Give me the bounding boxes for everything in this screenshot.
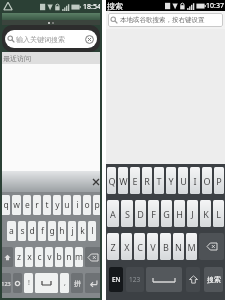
- button[interactable]: s: [18, 221, 26, 241]
- button[interactable]: Q: [107, 167, 116, 194]
- staticText: J: [191, 208, 194, 220]
- button[interactable]: Shift: [186, 267, 200, 292]
- button[interactable]: e: [23, 195, 31, 215]
- staticText: G: [163, 208, 170, 220]
- staticText: W: [119, 175, 128, 187]
- button[interactable]: Space: [35, 273, 58, 293]
- button[interactable]: !: [24, 273, 33, 293]
- button[interactable]: Backspace: [85, 247, 101, 267]
- button[interactable]: G: [161, 200, 172, 227]
- staticText: 18:54: [83, 2, 101, 12]
- staticText: j: [71, 225, 74, 237]
- button[interactable]: Close keyboard: [91, 177, 100, 186]
- button[interactable]: k: [78, 221, 86, 241]
- staticText: C: [137, 241, 143, 253]
- button[interactable]: r: [33, 195, 41, 215]
- button[interactable]: S: [121, 200, 133, 227]
- button[interactable]: 输入关键词搜索: [5, 30, 97, 48]
- button[interactable]: C: [134, 233, 145, 260]
- button[interactable]: q: [1, 195, 10, 215]
- button[interactable]: 123: [1, 273, 11, 293]
- button[interactable]: Z: [107, 233, 119, 260]
- button[interactable]: R: [142, 167, 152, 194]
- button[interactable]: A: [107, 200, 119, 227]
- button[interactable]: ,: [60, 273, 69, 293]
- staticText: Y: [168, 175, 174, 187]
- button[interactable]: f: [38, 221, 46, 241]
- button[interactable]: N: [173, 233, 184, 260]
- staticText: P: [216, 175, 222, 187]
- button[interactable]: V: [147, 233, 158, 260]
- staticText: O: [203, 175, 211, 187]
- button[interactable]: 搜索: [204, 267, 223, 292]
- button[interactable]: w: [12, 195, 21, 215]
- button[interactable]: p: [93, 195, 101, 215]
- button[interactable]: m: [75, 247, 83, 267]
- button[interactable]: z: [15, 247, 23, 267]
- button[interactable]: u: [63, 195, 71, 215]
- button[interactable]: I: [190, 167, 200, 194]
- button[interactable]: Shift: [1, 247, 13, 267]
- staticText: S: [125, 208, 130, 220]
- staticText: e: [25, 199, 30, 211]
- button[interactable]: b: [55, 247, 63, 267]
- button[interactable]: 本地或谷歌搜索，按右键设置: [108, 13, 223, 27]
- staticText: v: [47, 251, 52, 263]
- staticText: y: [55, 199, 60, 211]
- button[interactable]: g: [48, 221, 56, 241]
- button[interactable]: i: [73, 195, 81, 215]
- staticText: L: [216, 208, 221, 220]
- staticText: x: [27, 251, 32, 263]
- button[interactable]: J: [187, 200, 198, 227]
- button[interactable]: X: [121, 233, 132, 260]
- button[interactable]: 拼: [71, 273, 83, 293]
- button[interactable]: x: [25, 247, 33, 267]
- button[interactable]: d: [28, 221, 36, 241]
- button[interactable]: y: [53, 195, 61, 215]
- button[interactable]: Space: [146, 267, 182, 292]
- button[interactable]: Settings: [13, 273, 22, 293]
- button[interactable]: Backspace: [199, 233, 224, 260]
- button[interactable]: a: [7, 221, 16, 241]
- staticText: X: [124, 241, 130, 253]
- staticText: E: [132, 175, 138, 187]
- staticText: g: [49, 225, 55, 237]
- staticText: a: [9, 225, 14, 237]
- button[interactable]: l: [88, 221, 96, 241]
- button[interactable]: H: [174, 200, 185, 227]
- button[interactable]: c: [35, 247, 43, 267]
- staticText: b: [56, 251, 62, 263]
- staticText: 10:37: [206, 1, 224, 11]
- button[interactable]: B: [160, 233, 171, 260]
- button[interactable]: E: [130, 167, 140, 194]
- button[interactable]: v: [45, 247, 53, 267]
- button[interactable]: K: [200, 200, 211, 227]
- button[interactable]: O: [202, 167, 212, 194]
- button[interactable]: P: [214, 167, 224, 194]
- button[interactable]: U: [178, 167, 188, 194]
- button[interactable]: n: [65, 247, 73, 267]
- staticText: N: [175, 241, 182, 253]
- button[interactable]: W: [118, 167, 128, 194]
- button[interactable]: T: [154, 167, 164, 194]
- button[interactable]: t: [43, 195, 51, 215]
- button[interactable]: h: [58, 221, 66, 241]
- staticText: w: [13, 199, 20, 211]
- button[interactable]: Enter: [85, 273, 101, 293]
- staticText: 输入关键词搜索: [16, 35, 65, 44]
- button[interactable]: Y: [166, 167, 176, 194]
- staticText: 123: [129, 275, 141, 284]
- staticText: d: [29, 225, 35, 237]
- button[interactable]: F: [148, 200, 159, 227]
- button[interactable]: D: [135, 200, 146, 227]
- button[interactable]: L: [213, 200, 224, 227]
- button[interactable]: 123: [126, 267, 144, 292]
- button[interactable]: o: [83, 195, 91, 215]
- staticText: c: [37, 251, 42, 263]
- button[interactable]: Clear: [84, 34, 95, 45]
- button[interactable]: EN: [109, 267, 123, 292]
- button[interactable]: M: [186, 233, 197, 260]
- button[interactable]: j: [68, 221, 76, 241]
- staticText: H: [176, 208, 183, 220]
- staticText: Z: [110, 241, 116, 253]
